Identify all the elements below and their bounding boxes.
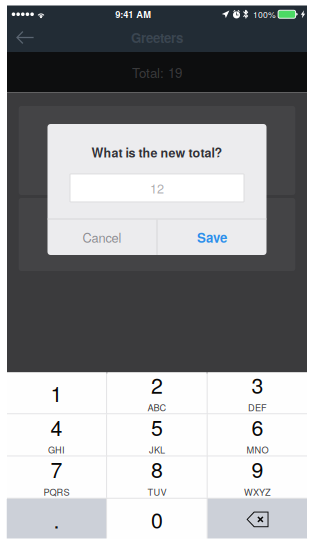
button[interactable]: 5 <box>107 414 207 456</box>
staticText: WXYZ <box>244 485 271 498</box>
staticText: 6 <box>251 411 263 442</box>
button[interactable]: Back <box>7 23 47 52</box>
staticText: 1 <box>50 377 62 408</box>
staticText: TUV <box>147 485 166 498</box>
button[interactable]: 3 <box>208 372 307 413</box>
staticText: DEF <box>248 401 267 414</box>
staticText: 9:41 AM <box>115 8 151 21</box>
staticText: . <box>53 504 59 535</box>
button[interactable]: 6 <box>208 414 307 456</box>
button[interactable]: 4 <box>7 414 106 456</box>
staticText: What is the new total? <box>91 143 222 161</box>
button[interactable]: . <box>7 499 106 540</box>
staticText: 100% <box>253 8 276 20</box>
staticText: 8 <box>151 454 163 484</box>
staticText: Total: 19 <box>132 63 182 82</box>
button[interactable]: Delete <box>208 499 307 540</box>
staticText: Greeters <box>131 28 183 47</box>
staticText: GHI <box>48 443 65 456</box>
button[interactable]: Cancel <box>47 219 156 255</box>
button[interactable]: 9 <box>208 457 307 498</box>
staticText: ABC <box>147 401 166 414</box>
staticText: 2 <box>151 369 163 400</box>
staticText: Cancel <box>82 228 121 246</box>
staticText: Save <box>197 228 227 247</box>
button[interactable]: 1 <box>7 372 106 413</box>
staticText: PQRS <box>43 485 69 498</box>
button[interactable]: 0 <box>107 499 207 540</box>
staticText: 4 <box>50 411 62 442</box>
staticText: 12 <box>150 179 164 197</box>
staticText: 5 <box>151 411 163 442</box>
staticText: 9 <box>251 454 263 484</box>
staticText: MNO <box>246 443 268 456</box>
staticText: 3 <box>251 369 263 400</box>
staticText: 0 <box>151 504 163 535</box>
button[interactable]: 8 <box>107 457 207 498</box>
staticText: 7 <box>50 454 62 484</box>
button[interactable]: Save <box>157 219 266 255</box>
staticText: JKL <box>149 443 165 456</box>
button[interactable]: 7 <box>7 457 106 498</box>
button[interactable]: 2 <box>107 372 207 413</box>
